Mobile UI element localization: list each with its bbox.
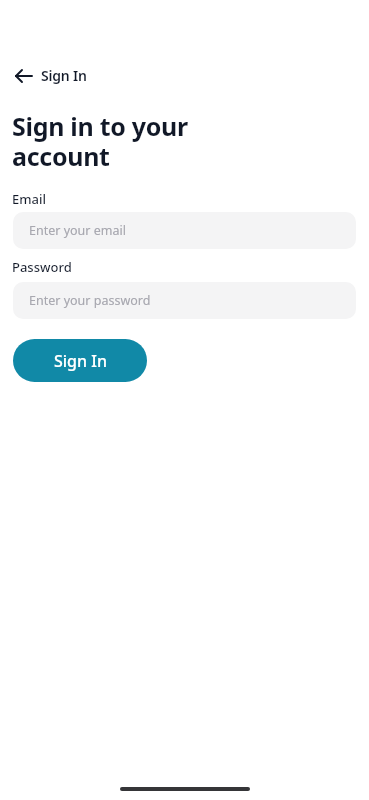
button[interactable]: Sign In [15, 64, 87, 87]
staticText: Sign in to your account [12, 109, 188, 174]
staticText: Email [12, 190, 47, 208]
button[interactable]: Enter your email [13, 212, 356, 249]
staticText: Password [12, 258, 72, 276]
staticText: Enter your email [29, 222, 126, 239]
staticText: Enter your password [29, 292, 151, 309]
staticText: Sign In [41, 66, 87, 85]
button[interactable]: Enter your password [13, 282, 356, 319]
button[interactable]: Sign In [13, 339, 147, 382]
staticText: Sign In [54, 350, 107, 372]
